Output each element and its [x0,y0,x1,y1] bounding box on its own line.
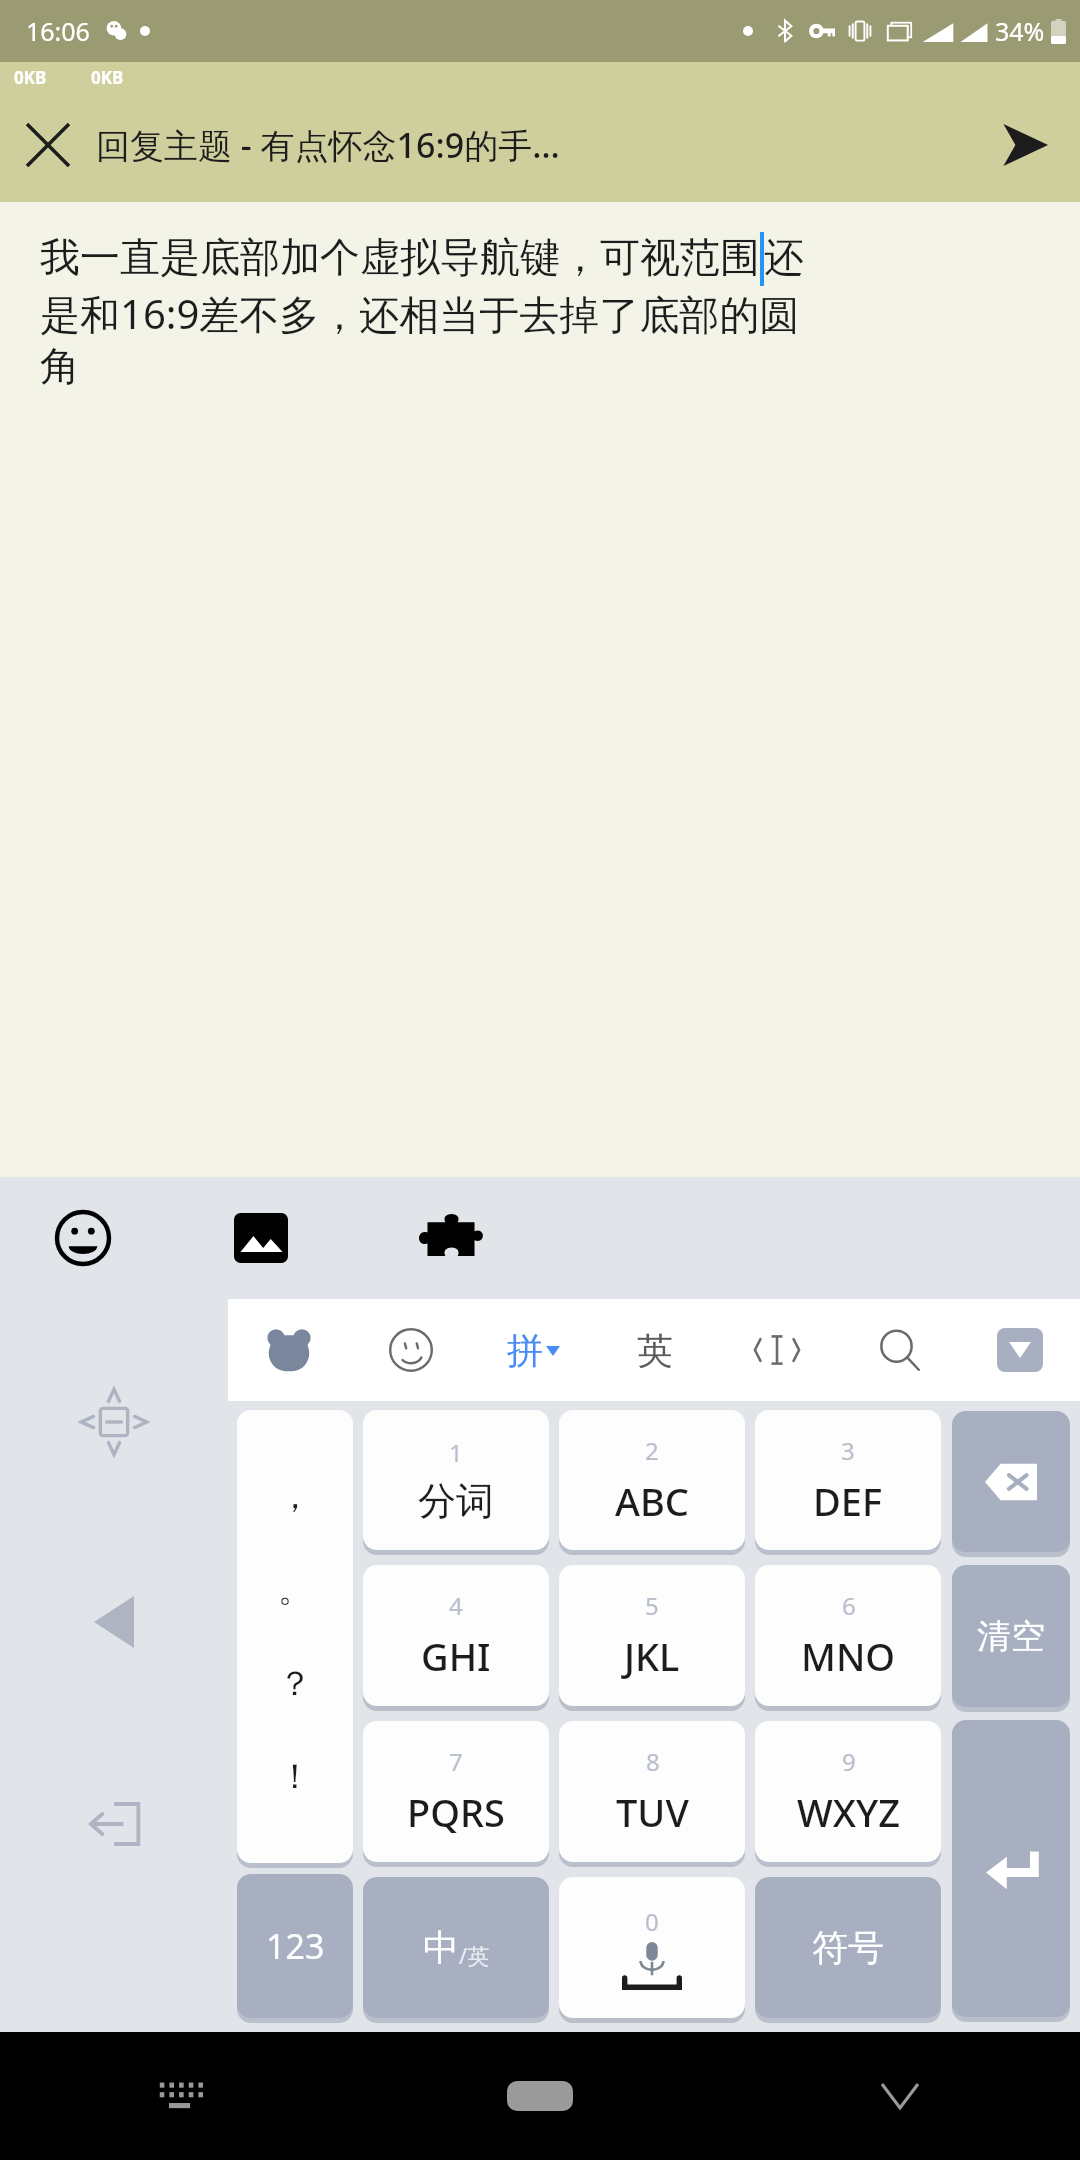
button[interactable]: Backspace [952,1411,1070,1552]
staticText: ？ [278,1662,312,1705]
button[interactable]: 4 [363,1565,549,1706]
button[interactable] [228,1299,350,1401]
staticText: 9 [842,1745,856,1778]
staticText: 角 [40,341,80,391]
staticText: ！ [278,1755,312,1798]
staticText: 123 [266,1923,325,1969]
staticText: 。 [278,1568,312,1611]
button[interactable]: Hide keyboard [69,1779,159,1869]
button[interactable]: Hide keyboard [720,2032,1080,2160]
button[interactable]: Keyboard [0,2032,360,2160]
staticText: 5 [645,1589,659,1622]
staticText: 0 [645,1905,659,1938]
staticText: DEF [813,1475,883,1527]
staticText: 拼 [507,1328,543,1373]
staticText: 34% [995,14,1045,48]
staticText: 分词 [418,1477,494,1525]
button[interactable]: Move keyboard [69,1377,159,1467]
button[interactable]: Image [166,1177,356,1299]
staticText: 4 [449,1589,463,1622]
staticText: JKL [624,1630,680,1682]
button[interactable] [350,1299,472,1401]
staticText: 1 [449,1436,463,1469]
staticText: TUV [616,1786,689,1838]
button[interactable]: 拼 [472,1299,594,1401]
button[interactable]: ， [237,1410,353,1863]
staticText: 回复主题 - 有点怀念16:9的手… [96,122,560,168]
button[interactable]: 中 [363,1877,549,2018]
staticText: 8 [646,1745,660,1778]
button[interactable] [838,1299,960,1401]
staticText: MNO [801,1630,896,1682]
button[interactable]: Emoji [0,1177,166,1299]
button[interactable]: Enter [952,1720,1070,2017]
staticText: 中 [423,1925,459,1970]
button[interactable]: 清空 [952,1565,1070,1707]
staticText: 还 [764,232,804,282]
button[interactable]: Plugins [356,1177,546,1299]
button[interactable]: Close [0,97,96,193]
button[interactable]: 英 [594,1299,716,1401]
button[interactable]: Home [360,2032,720,2160]
staticText: /英 [459,1940,490,1970]
staticText: 7 [449,1745,463,1778]
button[interactable]: 6 [755,1565,941,1706]
staticText: 我一直是底部加个虚拟导航键，可视范围 [40,232,760,282]
button[interactable]: 1 [363,1410,549,1550]
staticText: 3 [841,1434,855,1467]
staticText: 0KB [91,66,124,89]
button[interactable]: 8 [559,1721,745,1862]
button[interactable]: Previous [69,1577,159,1667]
staticText: 符号 [812,1925,884,1970]
staticText: 清空 [977,1615,1045,1658]
button[interactable]: 123 [237,1874,353,2018]
button[interactable]: 0 [559,1877,745,2018]
staticText: GHI [421,1630,491,1682]
button[interactable]: 9 [755,1721,941,1862]
staticText: 是和16:9差不多，还相当于去掉了底部的圆 [40,286,800,341]
staticText: 0KB [14,66,47,89]
staticText: 英 [637,1328,673,1373]
staticText: 16:06 [26,14,90,48]
button[interactable]: 2 [559,1410,745,1550]
staticText: WXYZ [797,1786,900,1838]
button[interactable]: 符号 [755,1877,941,2018]
button[interactable]: 5 [559,1565,745,1706]
staticText: ABC [615,1475,689,1527]
button[interactable] [716,1299,838,1401]
staticText: 2 [645,1434,659,1467]
button[interactable] [960,1299,1080,1401]
staticText: PQRS [407,1786,505,1838]
staticText: ， [278,1475,312,1518]
staticText: 6 [842,1589,856,1622]
button[interactable]: 7 [363,1721,549,1862]
button[interactable]: 3 [755,1410,941,1550]
button[interactable]: Send [970,90,1080,200]
